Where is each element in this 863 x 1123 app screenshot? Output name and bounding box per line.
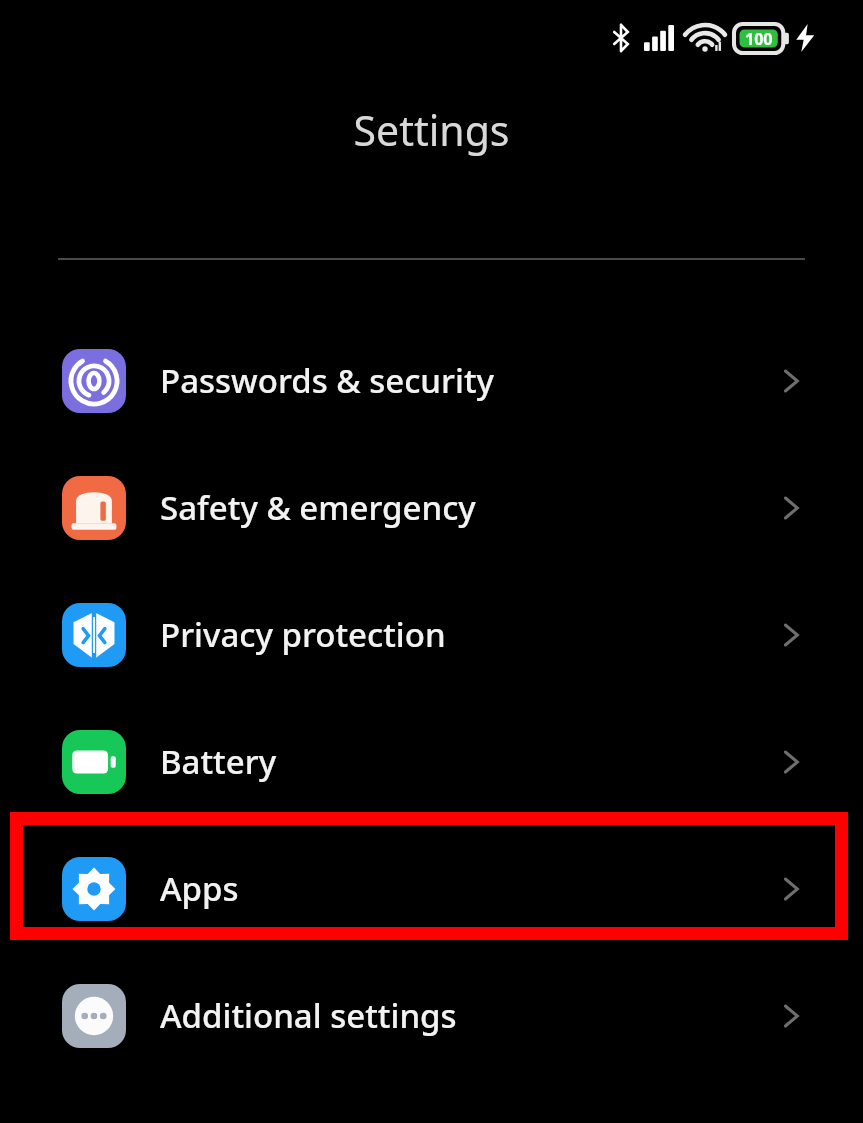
other: Open Safety & emergency [771,488,811,528]
staticText: Privacy protection [160,612,446,657]
button[interactable]: Apps [0,825,863,952]
staticText: Additional settings [160,993,457,1038]
button[interactable]: Safety & emergency [0,444,863,571]
button[interactable]: Additional settings [0,952,863,1079]
button[interactable]: Passwords & security [0,317,863,444]
staticText: Apps [160,866,239,911]
staticText: 100 [745,28,773,50]
staticText: Passwords & security [160,358,494,403]
other: Open Passwords & security [771,361,811,401]
button[interactable]: Battery [0,698,863,825]
other: Open Apps [771,869,811,909]
other: Open Privacy protection [771,615,811,655]
other: Open Battery [771,742,811,782]
staticText: Settings [353,102,510,158]
staticText: Battery [160,739,277,784]
other: Open Additional settings [771,996,811,1036]
staticText: Safety & emergency [160,485,476,530]
button[interactable]: Privacy protection [0,571,863,698]
